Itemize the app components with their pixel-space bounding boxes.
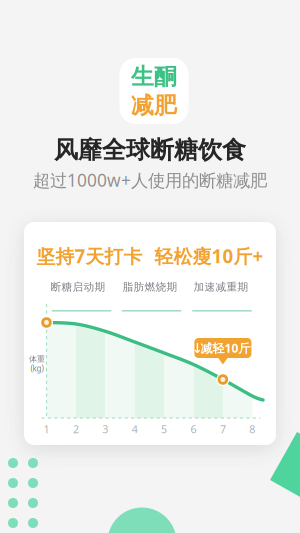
staticText: 2: [73, 422, 79, 436]
staticText: 5: [161, 422, 167, 436]
staticText: 6: [190, 422, 196, 436]
staticText: 1: [43, 422, 49, 436]
staticText: 超过1000w+人使用的断糖减肥: [33, 168, 267, 191]
staticText: 减轻10斤: [200, 340, 250, 356]
staticText: 体重: [29, 354, 45, 364]
staticText: 7: [220, 422, 226, 436]
staticText: 坚持7天打卡 轻松瘦10斤+: [36, 244, 263, 268]
staticText: (kg): [30, 363, 43, 374]
staticText: 8: [249, 422, 255, 436]
staticText: 3: [102, 422, 108, 436]
staticText: 风靡全球断糖饮食: [54, 135, 246, 165]
staticText: 减肥: [131, 91, 177, 119]
staticText: 生酮: [131, 63, 177, 90]
staticText: 断糖启动期: [50, 280, 105, 293]
staticText: 4: [132, 422, 138, 436]
staticText: 脂肪燃烧期: [122, 280, 177, 293]
staticText: 加速减重期: [193, 280, 248, 293]
